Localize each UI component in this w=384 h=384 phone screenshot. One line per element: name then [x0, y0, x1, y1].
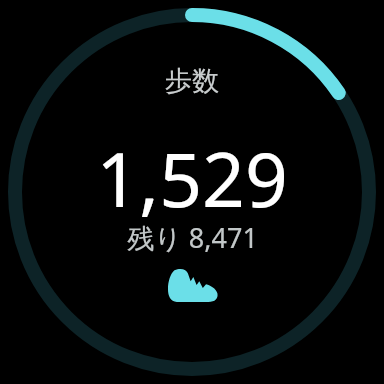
staticText: 残り 8,471 — [127, 219, 258, 256]
button[interactable]: 歩数 1,529 残り 8,471 — [0, 0, 384, 384]
staticText: 歩数 — [165, 64, 219, 98]
staticText: 1,529 — [96, 127, 288, 229]
button[interactable]: Steps activity — [165, 266, 219, 304]
